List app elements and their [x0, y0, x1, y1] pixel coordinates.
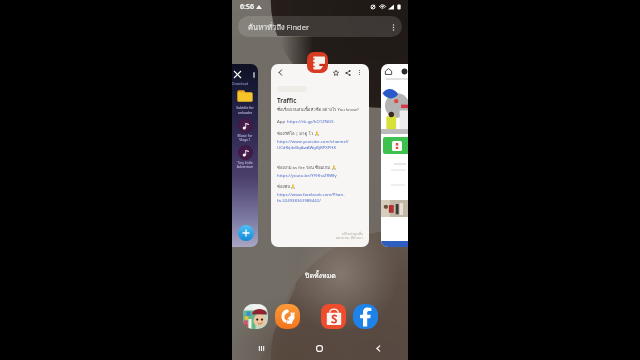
button[interactable]: Home: [290, 336, 349, 360]
staticText: Traffic: [277, 96, 297, 104]
staticText: ปิดทั้งหมด: [305, 270, 336, 281]
staticText: Music for Vlogs 1: [232, 133, 258, 142]
button[interactable]: Share: [342, 67, 353, 78]
button[interactable]: Subway Surfers: [243, 304, 268, 329]
staticText: ช่องพบ🙏: [277, 183, 296, 190]
button[interactable]: Shopee: [321, 304, 346, 329]
staticText: https://rb.gy/hO1ZNGS: [287, 118, 334, 124]
button[interactable]: Close: [232, 64, 258, 247]
staticText: ค้นหาทั่วถึง Finder: [248, 21, 310, 33]
button[interactable]: Facebook: [353, 304, 378, 329]
button[interactable]: Recents: [232, 336, 290, 360]
button[interactable]: Close: [232, 69, 243, 80]
staticText: Download: [232, 81, 249, 86]
button[interactable]: [381, 64, 408, 247]
staticText: ชื่อเรื่องเกมสนเนื้อหัวข้อ อย่างไร You k…: [277, 106, 359, 113]
staticText: Tiny Little Adventure: [232, 160, 258, 169]
button[interactable]: Add: [238, 225, 254, 241]
button[interactable]: ปิดทั้งหมด: [295, 268, 346, 283]
button[interactable]: Back: [349, 336, 408, 360]
button[interactable]: More: [354, 67, 365, 78]
staticText: 6:56: [240, 2, 254, 12]
button[interactable]: ค้นหาทั่วถึง Finder: [238, 16, 402, 37]
button[interactable]: Pantip: [307, 52, 328, 73]
staticText: Subtitle for unloader: [232, 105, 258, 115]
button[interactable]: Favourite: [330, 67, 341, 78]
staticText: https://www.facebook.com/Phan- fa-324938…: [277, 191, 345, 203]
staticText: https://www.youtube.com/channel/ UCdfkJd…: [277, 138, 349, 150]
staticText: แก้ไขล่าสุดเมื่อ หลาย ชม. ที่ผ่านมา: [335, 231, 363, 241]
staticText: ช่องวิดีโอ | มาดู โว 🙏: [277, 130, 320, 137]
staticText: App: [277, 118, 287, 124]
button[interactable]: Back: [275, 67, 286, 78]
staticText: ช่องเกม as fire รอน ซ้อมเกม 🙏: [277, 164, 337, 171]
button[interactable]: UC Browser: [275, 304, 300, 329]
staticText: https://youtu.be/YYHhzZRWfy: [277, 172, 337, 178]
button[interactable]: Back: [271, 64, 369, 247]
button[interactable]: More options: [384, 18, 402, 36]
